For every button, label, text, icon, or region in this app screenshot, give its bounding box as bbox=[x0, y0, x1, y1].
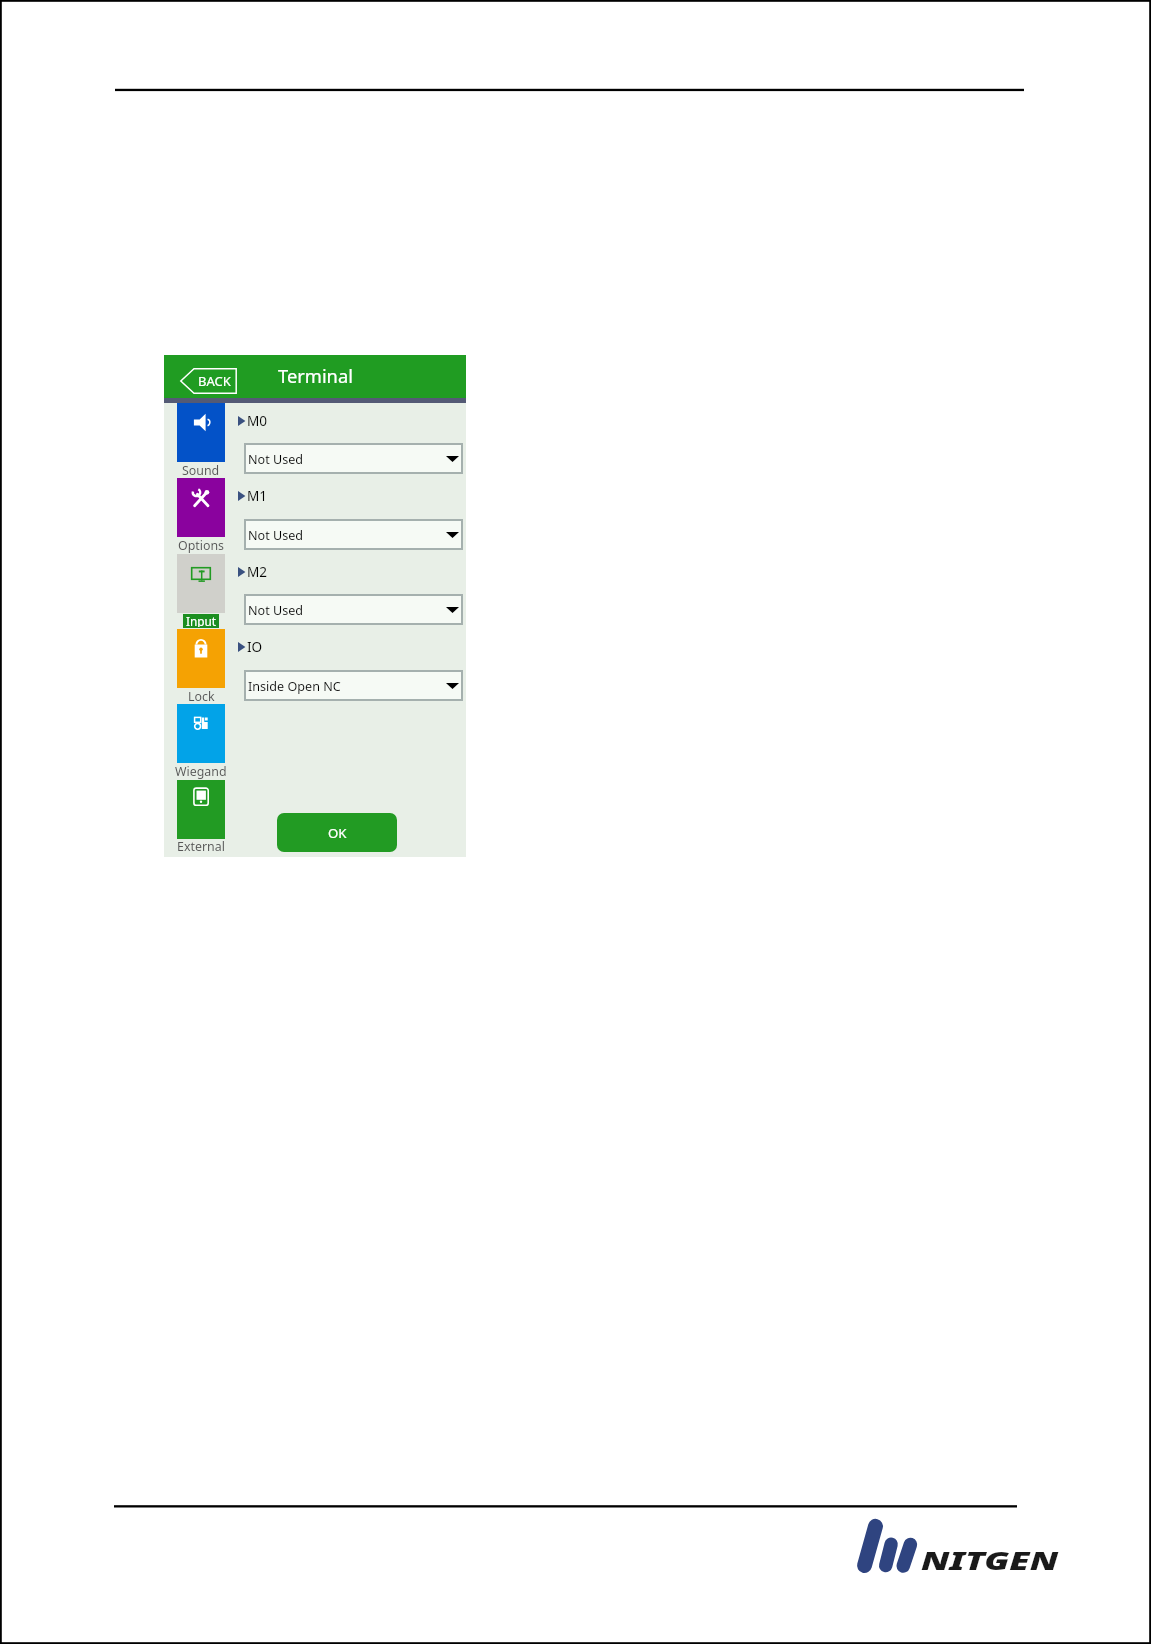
button[interactable]: Not Used bbox=[244, 594, 463, 625]
staticText: Input bbox=[186, 613, 217, 627]
staticText: Inside Open NC bbox=[248, 678, 341, 695]
staticText: Not Used bbox=[248, 451, 304, 468]
staticText: Not Used bbox=[248, 602, 304, 619]
button[interactable]: Not Used bbox=[244, 443, 463, 474]
staticText: NITGEN bbox=[921, 1543, 1059, 1577]
button[interactable]: Inside Open NC bbox=[244, 670, 463, 701]
button[interactable]: External bbox=[177, 780, 225, 839]
staticText: Wiegand bbox=[175, 763, 227, 780]
staticText: IO bbox=[247, 637, 263, 656]
staticText: Lock bbox=[188, 688, 215, 705]
staticText: External bbox=[177, 838, 225, 855]
staticText: Not Used bbox=[248, 527, 304, 544]
staticText: Sound bbox=[182, 462, 220, 479]
staticText: Options bbox=[178, 537, 225, 554]
button[interactable]: Back bbox=[180, 368, 237, 394]
button[interactable]: Input bbox=[177, 554, 225, 613]
staticText: OK bbox=[328, 824, 347, 842]
staticText: M2 bbox=[247, 562, 268, 581]
staticText: BACK bbox=[198, 372, 231, 390]
button[interactable]: Options bbox=[177, 478, 225, 537]
staticText: M0 bbox=[247, 411, 268, 430]
button[interactable]: Lock bbox=[177, 629, 225, 688]
button[interactable]: OK bbox=[277, 813, 397, 852]
staticText: M1 bbox=[247, 486, 268, 505]
staticText: Terminal bbox=[278, 363, 353, 388]
button[interactable]: Wiegand bbox=[177, 704, 225, 763]
button[interactable]: Not Used bbox=[244, 519, 463, 550]
button[interactable]: Sound bbox=[177, 403, 225, 462]
